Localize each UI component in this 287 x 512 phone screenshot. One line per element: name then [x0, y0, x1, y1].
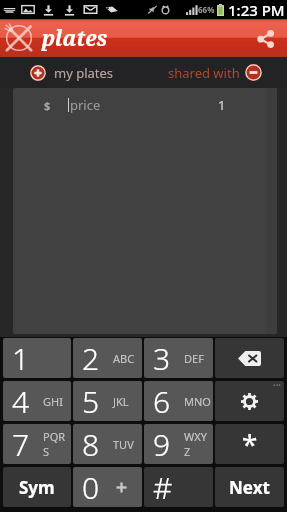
staticText: JKL: [113, 394, 129, 409]
staticText: 0: [82, 467, 100, 507]
button[interactable]: 5: [73, 381, 142, 421]
staticText: 9: [153, 424, 171, 464]
staticText: PQRS: [43, 429, 71, 459]
button[interactable]: 3: [144, 338, 213, 378]
button[interactable]: Backspace: [215, 338, 284, 378]
button[interactable]: Sym: [3, 467, 71, 507]
staticText: 1: [218, 96, 226, 114]
staticText: 8: [82, 424, 100, 464]
staticText: WXYZ: [184, 429, 213, 459]
staticText: MNO: [184, 394, 211, 409]
staticText: 1:23 PM: [228, 0, 285, 19]
staticText: •••: [273, 381, 281, 391]
staticText: my plates: [54, 64, 114, 82]
staticText: $: [44, 98, 51, 113]
staticText: ABC: [113, 351, 135, 366]
staticText: GHI: [43, 394, 63, 409]
button[interactable]: 8: [73, 424, 142, 464]
button[interactable]: Settings: [215, 381, 284, 421]
button[interactable]: 0: [73, 467, 142, 507]
staticText: 7: [12, 424, 30, 464]
button[interactable]: #: [144, 467, 213, 507]
staticText: 4: [12, 381, 30, 421]
staticText: price: [70, 96, 101, 114]
staticText: 3: [153, 338, 171, 378]
staticText: 66%: [198, 4, 215, 15]
staticText: 2: [82, 338, 100, 378]
staticText: 5: [82, 381, 100, 421]
staticText: Sym: [19, 476, 55, 499]
button[interactable]: 1: [3, 338, 71, 378]
staticText: plates: [42, 24, 108, 53]
staticText: *: [242, 425, 258, 463]
button[interactable]: *: [215, 424, 284, 464]
button[interactable]: shared with: [143, 57, 287, 88]
button[interactable]: Next: [215, 467, 284, 507]
staticText: DEF: [184, 351, 204, 366]
staticText: #: [153, 467, 173, 507]
button[interactable]: 6: [144, 381, 213, 421]
button[interactable]: 4: [3, 381, 71, 421]
staticText: 1: [12, 338, 30, 378]
button[interactable]: my plates: [0, 57, 143, 88]
button[interactable]: 2: [73, 338, 142, 378]
staticText: TUV: [113, 437, 134, 452]
button[interactable]: Share: [250, 23, 280, 53]
staticText: Next: [229, 476, 270, 499]
button[interactable]: 9: [144, 424, 213, 464]
staticText: shared with: [168, 64, 240, 82]
staticText: 6: [153, 381, 171, 421]
button[interactable]: 7: [3, 424, 71, 464]
